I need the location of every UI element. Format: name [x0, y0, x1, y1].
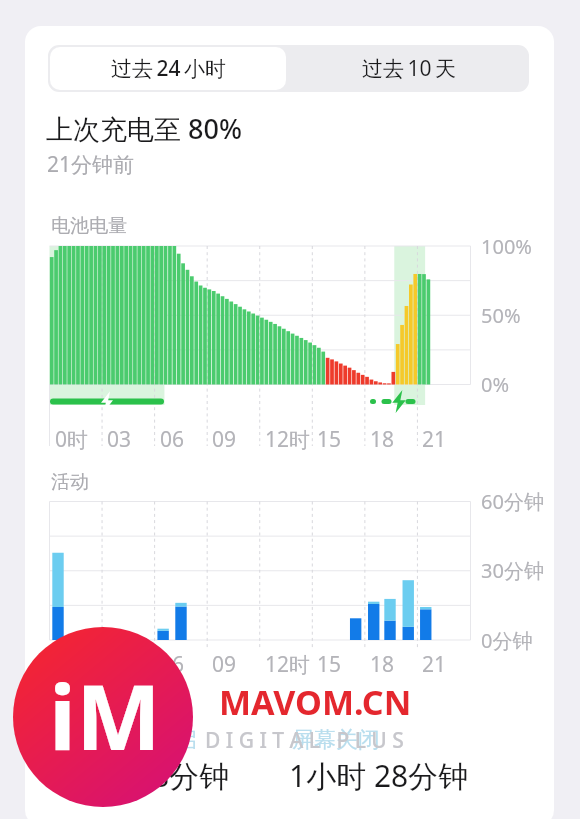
button[interactable]: 过去 10 天	[288, 45, 529, 92]
staticText: 21分钟前	[47, 150, 135, 179]
staticText: MAVOM.CN	[219, 679, 412, 725]
staticText: 8分钟	[152, 755, 230, 796]
staticText: 活动	[51, 470, 89, 494]
staticText: D I G I T A L P L U S	[205, 726, 404, 755]
staticText: 21	[422, 650, 447, 679]
staticText: 15	[317, 425, 342, 454]
staticText: 18	[370, 425, 395, 454]
staticText: 06	[160, 425, 185, 454]
staticText: 09	[212, 650, 237, 679]
staticText: 15	[317, 650, 342, 679]
staticText: 0时	[55, 425, 89, 454]
staticText: 06	[160, 650, 185, 679]
staticText: 屏幕开启	[109, 726, 197, 754]
staticText: 0分钟	[481, 627, 533, 654]
staticText: 18	[370, 650, 395, 679]
staticText: 0%	[481, 371, 510, 398]
staticText: 过去 24 小时	[111, 54, 226, 83]
staticText: 30分钟	[481, 557, 544, 584]
staticText: 60分钟	[481, 488, 544, 515]
staticText: 21	[422, 425, 447, 454]
staticText: 12时	[265, 650, 311, 679]
staticText: 过去 10 天	[362, 54, 456, 83]
staticText: 09	[212, 425, 237, 454]
staticText: 50%	[481, 302, 521, 329]
staticText: 1小时 28分钟	[289, 755, 469, 796]
staticText: 屏幕关闭	[292, 726, 380, 754]
staticText: 电池电量	[51, 214, 127, 238]
staticText: 03	[107, 425, 132, 454]
staticText: 上次充电至 80%	[46, 110, 242, 147]
button[interactable]: 过去 24 小时	[50, 47, 286, 90]
staticText: 100%	[481, 233, 532, 260]
staticText: 12时	[265, 425, 311, 454]
staticText: iM	[49, 654, 161, 777]
